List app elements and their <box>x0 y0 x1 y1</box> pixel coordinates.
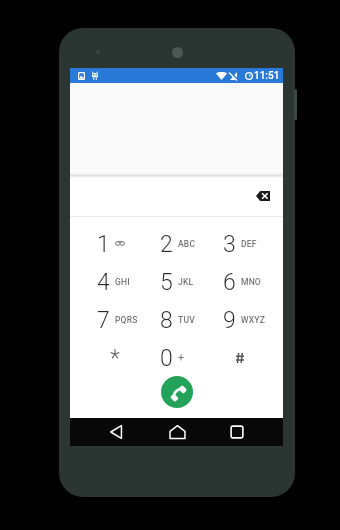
staticText: 5 <box>160 269 173 296</box>
staticText: 9 <box>223 307 236 334</box>
button[interactable]: 5 <box>145 263 208 301</box>
button[interactable]: Back <box>102 418 130 446</box>
staticText: 11:51 <box>254 70 280 82</box>
staticText: PQRS <box>115 315 138 325</box>
button[interactable]: Call <box>161 376 193 408</box>
staticText: 8 <box>160 307 173 334</box>
button[interactable]: 0 <box>145 339 208 377</box>
staticText: 2 <box>160 231 173 258</box>
button[interactable]: 1 <box>82 225 145 263</box>
staticText: 0 <box>160 345 173 372</box>
button[interactable]: 8 <box>145 301 208 339</box>
staticText: 4 <box>97 269 110 296</box>
button[interactable]: 3 <box>208 225 271 263</box>
staticText: 7 <box>97 307 110 334</box>
staticText: * <box>110 345 120 372</box>
button[interactable]: Home <box>163 418 191 446</box>
staticText: DEF <box>241 239 257 249</box>
button[interactable] <box>208 339 271 377</box>
button[interactable]: 7 <box>82 301 145 339</box>
staticText: JKL <box>178 277 194 287</box>
staticText: + <box>178 351 185 364</box>
button[interactable]: * <box>82 339 145 377</box>
staticText: ABC <box>178 239 196 249</box>
button[interactable]: 2 <box>145 225 208 263</box>
staticText: TUV <box>178 315 195 325</box>
button[interactable]: 9 <box>208 301 271 339</box>
staticText: 1 <box>97 231 110 258</box>
staticText: 3 <box>223 231 236 258</box>
staticText: MNO <box>241 277 261 287</box>
button[interactable]: Recent apps <box>223 418 251 446</box>
button[interactable]: Backspace <box>252 185 274 207</box>
staticText: 6 <box>223 269 236 296</box>
staticText: WXYZ <box>241 315 265 325</box>
button[interactable]: 6 <box>208 263 271 301</box>
button[interactable]: 4 <box>82 263 145 301</box>
staticText: GHI <box>115 277 130 287</box>
